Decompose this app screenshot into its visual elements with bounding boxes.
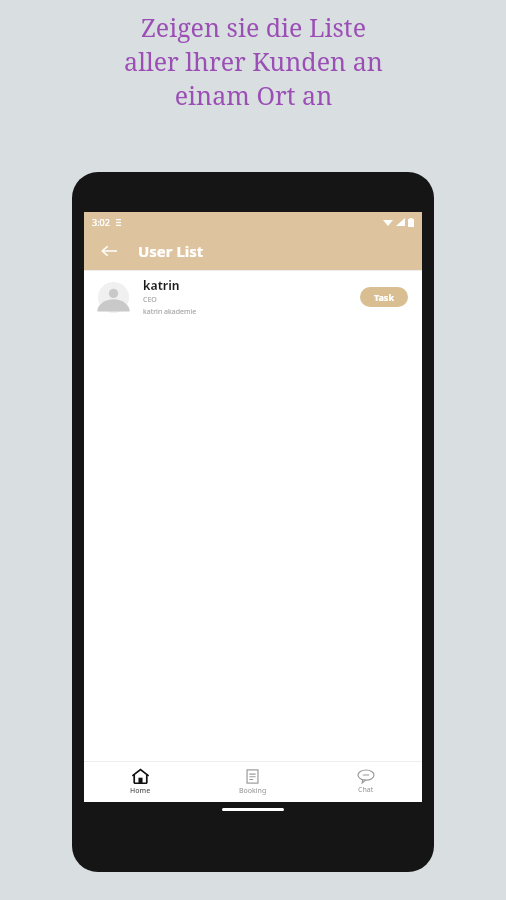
button[interactable]: Task: [360, 287, 408, 307]
staticText: Home: [130, 786, 151, 796]
button[interactable]: Home: [84, 762, 196, 802]
staticText: User List: [138, 241, 204, 261]
staticText: CEO: [143, 295, 157, 305]
staticText: Task: [374, 291, 394, 303]
staticText: katrin akademie: [143, 307, 197, 317]
staticText: Booking: [239, 786, 267, 796]
button[interactable]: Booking: [196, 762, 309, 802]
staticText: Zeigen sie die Liste aller lhrer Kunden …: [124, 10, 383, 112]
staticText: Chat: [358, 785, 374, 795]
button[interactable]: Back: [94, 236, 124, 266]
button[interactable]: Chat: [309, 762, 422, 802]
staticText: katrin: [143, 277, 180, 293]
button[interactable]: katrin: [84, 271, 422, 323]
staticText: 3:02: [92, 216, 110, 228]
